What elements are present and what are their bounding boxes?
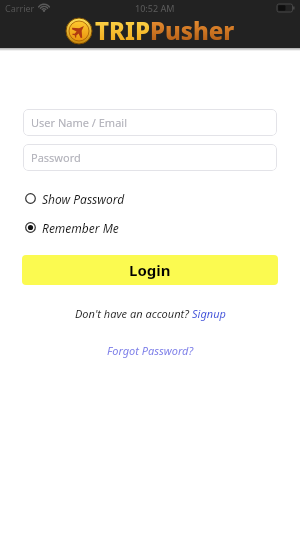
staticText: Login <box>129 260 171 280</box>
staticText: Show Password <box>42 191 125 205</box>
button[interactable]: Remember Me <box>25 220 119 234</box>
button[interactable]: User Name / Email <box>23 109 277 136</box>
button[interactable]: Password <box>23 144 277 171</box>
staticText: Don't have an account? <box>75 306 192 321</box>
staticText: Forgot Password? <box>107 343 194 358</box>
button[interactable]: Show Password <box>25 191 125 205</box>
staticText: Carrier <box>5 2 35 14</box>
staticText: Password <box>31 150 81 165</box>
button[interactable]: Login <box>22 255 278 285</box>
staticText: User Name / Email <box>31 115 127 130</box>
staticText: Remember Me <box>42 220 119 234</box>
button[interactable]: Signup <box>192 306 226 321</box>
staticText: Signup <box>192 306 226 321</box>
staticText: TRIPPusher <box>95 14 235 47</box>
staticText: 10:52 AM <box>135 2 175 14</box>
button[interactable]: Forgot Password? <box>107 343 194 358</box>
